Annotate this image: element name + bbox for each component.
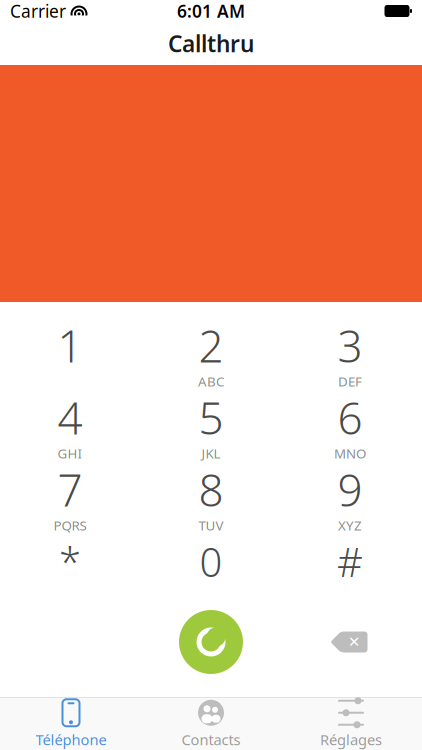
button[interactable]: 6 [290, 388, 410, 460]
staticText: 7 [57, 460, 82, 519]
button[interactable]: # [290, 532, 410, 604]
staticText: Contacts [181, 730, 240, 749]
button[interactable]: Réglages [281, 699, 421, 748]
staticText: XYZ [338, 516, 362, 534]
button[interactable]: 1 [10, 316, 130, 388]
staticText: 1 [57, 316, 82, 375]
staticText: 5 [198, 388, 223, 447]
staticText: Téléphone [35, 730, 106, 749]
staticText: JKL [201, 444, 220, 462]
staticText: 9 [337, 460, 362, 519]
button[interactable]: 8 [151, 460, 271, 532]
button[interactable]: Téléphone [1, 699, 141, 748]
staticText: ✕ [348, 634, 360, 650]
staticText: ABC [198, 372, 224, 390]
staticText: PQRS [53, 516, 86, 534]
staticText: 6:01 AM [177, 0, 245, 22]
button[interactable]: 4 [10, 388, 130, 460]
button[interactable]: * [10, 532, 130, 604]
staticText: TUV [198, 516, 223, 534]
button[interactable]: 9 [290, 460, 410, 532]
button[interactable]: Appeler [179, 610, 243, 674]
button[interactable]: 0 [151, 532, 271, 604]
button[interactable]: 5 [151, 388, 271, 460]
staticText: 6 [337, 388, 362, 447]
staticText: MNO [334, 444, 366, 462]
staticText: Carrier [10, 0, 66, 22]
staticText: # [337, 535, 363, 588]
button[interactable]: 3 [290, 316, 410, 388]
staticText: Réglages [320, 730, 382, 749]
staticText: Callthru [168, 28, 254, 58]
staticText: GHI [57, 444, 82, 462]
button[interactable]: Contacts [141, 699, 281, 748]
staticText: 8 [198, 460, 223, 519]
button[interactable]: Supprimer [322, 617, 378, 667]
button[interactable]: 2 [151, 316, 271, 388]
button[interactable]: 7 [10, 460, 130, 532]
staticText: 3 [337, 316, 362, 375]
staticText: 2 [198, 316, 223, 375]
staticText: DEF [338, 372, 362, 390]
staticText: 0 [199, 535, 222, 588]
staticText: * [59, 535, 81, 588]
staticText: 4 [57, 388, 82, 447]
